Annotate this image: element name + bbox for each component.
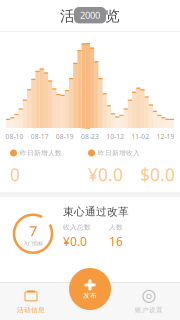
staticText: 16 <box>109 233 123 249</box>
staticText: 08-17 <box>31 132 49 141</box>
button[interactable]: 账户设置 <box>118 283 180 320</box>
staticText: ¥0.0 <box>88 163 123 186</box>
staticText: ¥0.0 <box>63 233 87 249</box>
staticText: 2000 <box>80 9 100 21</box>
staticText: 08-10 <box>6 132 24 141</box>
staticText: 入门指标 <box>23 240 43 247</box>
button[interactable]: 7 <box>0 200 180 267</box>
staticText: 收入总数 <box>63 223 91 231</box>
button[interactable]: 活动信息 <box>0 283 62 320</box>
staticText: 08-23 <box>81 132 99 141</box>
staticText: 发布 <box>83 291 97 300</box>
staticText: 活动信息 <box>17 306 45 314</box>
staticText: 11-02 <box>131 132 149 141</box>
staticText: 昨日新增人数 <box>20 149 62 157</box>
staticText: 08-19 <box>56 132 74 141</box>
staticText: 束心通过改革 <box>63 205 129 218</box>
staticText: 昨日新增收入 <box>98 149 140 157</box>
staticText: 10-12 <box>106 132 124 141</box>
staticText: 7 <box>29 221 37 240</box>
button[interactable]: 发布 <box>67 266 113 312</box>
staticText: 12-19 <box>156 132 174 141</box>
staticText: $0.0 <box>140 163 175 186</box>
staticText: 账户设置 <box>135 306 163 314</box>
staticText: 活动总览 <box>60 7 120 25</box>
staticText: 0 <box>10 163 20 186</box>
staticText: 人数 <box>109 223 123 231</box>
